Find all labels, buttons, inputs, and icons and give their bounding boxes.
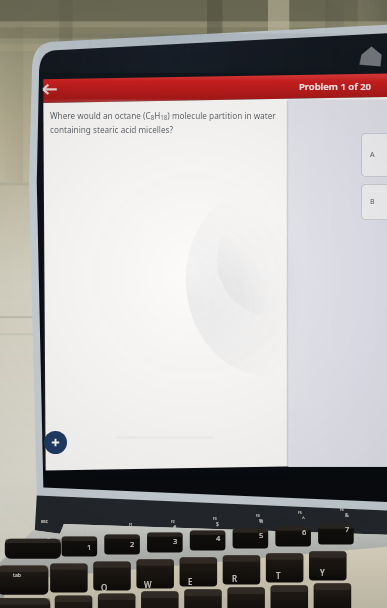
staticText: Q <box>101 582 108 593</box>
staticText: B <box>370 197 375 207</box>
staticText: R <box>232 573 238 584</box>
staticText: ~ <box>47 534 51 541</box>
button[interactable]: A <box>361 133 387 177</box>
staticText: Y <box>320 567 325 578</box>
staticText: # <box>173 524 177 531</box>
staticText: F6 <box>340 508 344 512</box>
staticText: 1 <box>87 542 92 552</box>
staticText: 2 <box>130 539 135 549</box>
button[interactable]: Add <box>44 431 67 454</box>
staticText: 7 <box>345 524 350 534</box>
staticText: T <box>276 570 281 581</box>
staticText: Problem 1 of 20 <box>299 80 372 93</box>
staticText: $ <box>216 521 219 528</box>
staticText: 3 <box>173 536 178 546</box>
staticText: 4 <box>216 533 221 543</box>
staticText: F5 <box>298 511 302 515</box>
staticText: F3 <box>213 517 217 521</box>
staticText: ^ <box>302 515 305 522</box>
staticText: F2 <box>171 520 175 524</box>
staticText: E <box>188 576 193 587</box>
staticText: esc <box>41 518 48 524</box>
staticText: W <box>144 579 152 590</box>
staticText: F1 <box>129 523 133 527</box>
staticText: A <box>370 150 375 160</box>
staticText: & <box>345 512 349 519</box>
staticText: @ <box>130 527 135 534</box>
staticText: F4 <box>256 514 260 518</box>
staticText: 6 <box>302 527 307 537</box>
staticText: 5 <box>259 530 264 540</box>
button[interactable]: B <box>361 184 387 220</box>
staticText: tab <box>13 572 21 579</box>
button[interactable]: Back <box>40 80 60 98</box>
staticText: Where would an octane (C8H18) molecule p… <box>50 110 282 144</box>
staticText: ! <box>87 530 89 537</box>
staticText: % <box>259 518 264 525</box>
